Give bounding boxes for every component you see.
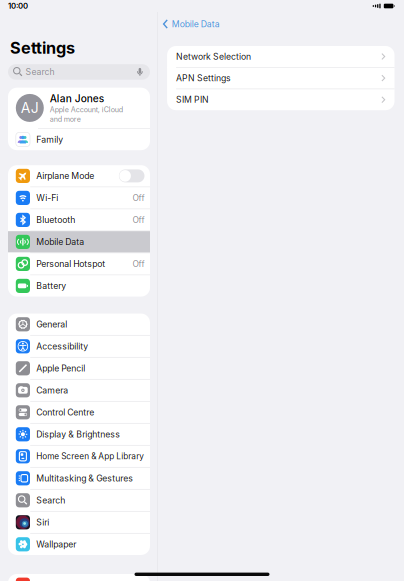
staticText: Bluetooth xyxy=(36,215,75,225)
button[interactable]: Siri xyxy=(8,512,150,533)
staticText: Mobile Data xyxy=(172,19,220,29)
staticText: Apple Account, iCloud xyxy=(50,105,123,114)
staticText: Mobile Data xyxy=(36,237,84,247)
button[interactable]: SIM PIN xyxy=(167,89,394,110)
button[interactable]: General xyxy=(8,314,150,335)
button[interactable]: Mobile Data xyxy=(8,231,150,253)
staticText: SIM PIN xyxy=(176,94,209,105)
staticText: Off xyxy=(132,215,144,225)
staticText: General xyxy=(36,319,67,329)
button[interactable]: Wi-Fi xyxy=(8,187,150,209)
staticText: Alan Jones xyxy=(50,92,104,105)
staticText: Network Selection xyxy=(176,51,251,62)
staticText: AJ xyxy=(21,99,39,116)
staticText: Siri xyxy=(36,517,49,527)
button[interactable]: Airplane Mode xyxy=(8,165,150,187)
button[interactable]: Multitasking & Gestures xyxy=(8,468,150,489)
staticText: Wallpaper xyxy=(36,539,76,549)
button[interactable]: Camera xyxy=(8,380,150,401)
button[interactable]: Control Centre xyxy=(8,402,150,423)
button[interactable]: Battery xyxy=(8,275,150,297)
staticText: Camera xyxy=(36,385,68,395)
button[interactable]: Display & Brightness xyxy=(8,424,150,445)
staticText: Family xyxy=(36,134,63,145)
button[interactable]: Bluetooth xyxy=(8,209,150,231)
button[interactable]: Home Screen & App Library xyxy=(8,446,150,467)
staticText: Wi-Fi xyxy=(36,193,58,203)
button[interactable]: Apple Pencil xyxy=(8,358,150,379)
button[interactable]: Wallpaper xyxy=(8,534,150,555)
staticText: Accessibility xyxy=(36,341,88,351)
staticText: Personal Hotspot xyxy=(36,259,105,269)
button[interactable]: Family xyxy=(8,129,150,150)
staticText: APN Settings xyxy=(176,73,231,83)
staticText: Home Screen & App Library xyxy=(36,451,144,461)
button[interactable]: Mobile Data xyxy=(158,15,220,33)
button[interactable]: Personal Hotspot xyxy=(8,253,150,275)
staticText: Multitasking & Gestures xyxy=(36,473,133,483)
staticText: 10:00 xyxy=(8,1,28,11)
staticText: Airplane Mode xyxy=(36,171,94,181)
button[interactable]: Search xyxy=(8,490,150,511)
button[interactable]: Notifications xyxy=(8,574,150,581)
staticText: Search xyxy=(25,67,54,77)
staticText: Off xyxy=(132,193,144,203)
button[interactable]: APN Settings xyxy=(167,68,394,89)
staticText: Battery xyxy=(36,281,66,291)
button[interactable]: Accessibility xyxy=(8,336,150,357)
button[interactable]: Search xyxy=(0,58,157,80)
button[interactable]: Network Selection xyxy=(167,46,394,67)
button[interactable]: AJ xyxy=(8,88,150,128)
staticText: and more xyxy=(50,115,81,123)
staticText: Off xyxy=(132,259,144,269)
staticText: Search xyxy=(36,495,65,505)
staticText: Apple Pencil xyxy=(36,363,85,373)
staticText: Settings xyxy=(10,38,75,58)
staticText: Display & Brightness xyxy=(36,429,120,439)
staticText: Control Centre xyxy=(36,407,94,417)
